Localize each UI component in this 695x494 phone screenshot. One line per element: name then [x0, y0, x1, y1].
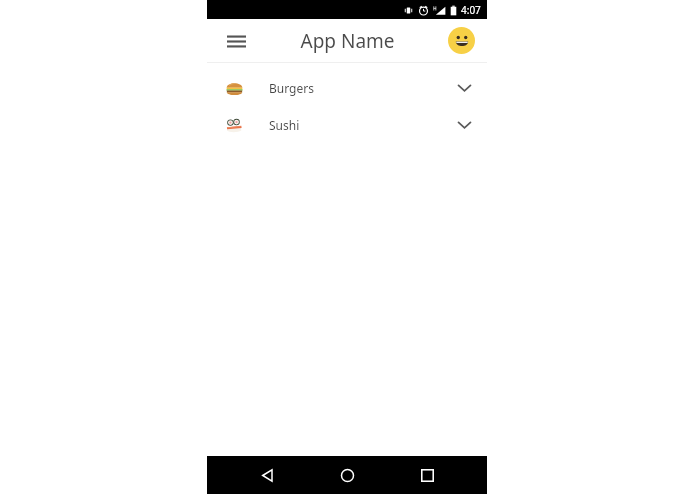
button[interactable]: Profile [448, 27, 475, 54]
button[interactable]: Back [247, 456, 287, 494]
button[interactable]: Sushi [207, 106, 487, 143]
staticText: App Name [300, 28, 395, 54]
button[interactable]: Burgers [207, 69, 487, 106]
button[interactable]: Home [327, 456, 367, 494]
staticText: Burgers [269, 80, 314, 96]
button[interactable]: Expand Sushi [447, 108, 481, 142]
staticText: 4:07 [461, 3, 481, 17]
button[interactable]: Open navigation menu [221, 26, 251, 56]
button[interactable]: Expand Burgers [447, 71, 481, 105]
button[interactable]: Recent apps [407, 456, 447, 494]
staticText: Sushi [269, 117, 300, 133]
